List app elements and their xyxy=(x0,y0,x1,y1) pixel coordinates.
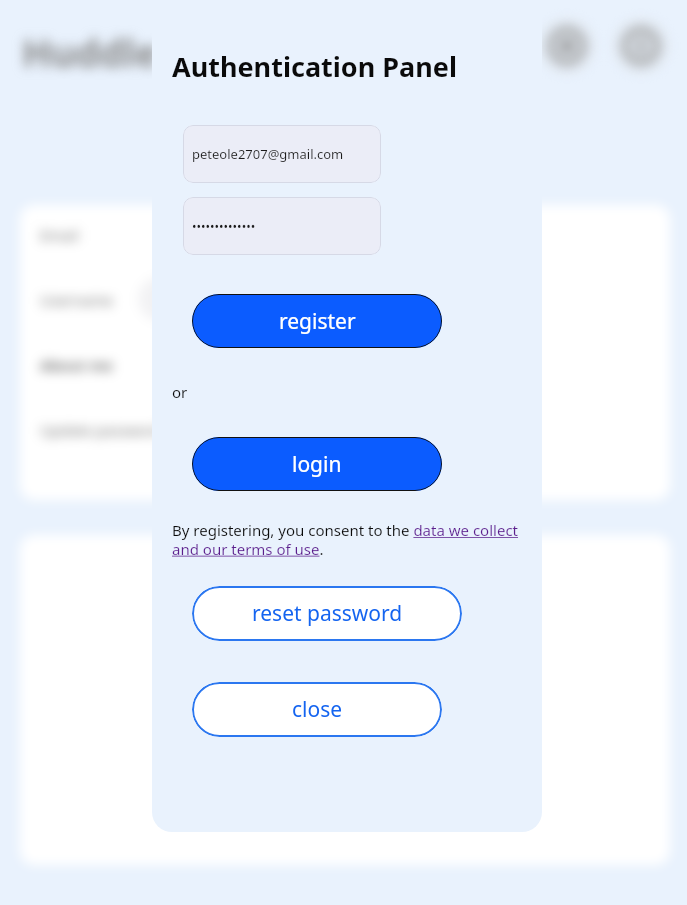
staticText: register xyxy=(279,307,356,336)
staticText: or xyxy=(172,382,188,402)
staticText: Email xyxy=(40,225,79,245)
button[interactable]: register xyxy=(192,294,442,348)
button[interactable]: reset password xyxy=(192,586,462,641)
button[interactable]: •••••••••••••• xyxy=(183,197,381,255)
staticText: Huddle xyxy=(22,26,158,78)
staticText: About me xyxy=(40,355,113,375)
staticText: peteole2707@gmail.com xyxy=(192,145,344,163)
staticText: By registering, you consent to the data … xyxy=(172,520,522,559)
staticText: reset password xyxy=(252,599,403,628)
staticText: close xyxy=(292,695,343,724)
button[interactable]: peteole2707@gmail.com xyxy=(183,125,381,183)
staticText: Update password xyxy=(40,420,164,440)
button[interactable]: close xyxy=(192,682,442,737)
button[interactable]: login xyxy=(192,437,442,491)
staticText: •••••••••••••• xyxy=(192,218,256,234)
staticText: login xyxy=(292,450,342,479)
staticText: Authentication Panel xyxy=(172,48,457,85)
staticText: Username xyxy=(40,290,113,310)
